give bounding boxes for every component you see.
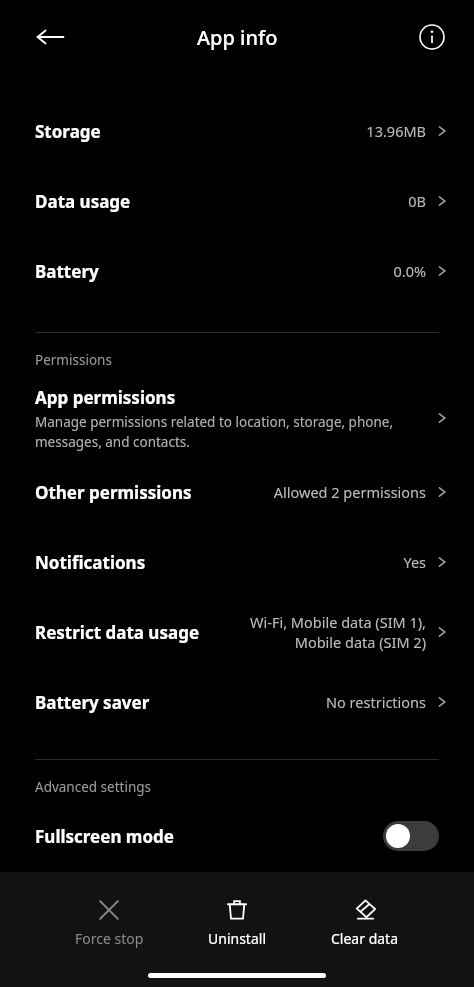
staticText: Force stop [75, 929, 144, 948]
button[interactable]: Force stop [54, 894, 164, 952]
button[interactable]: Battery [0, 236, 474, 306]
staticText: Advanced settings [35, 778, 152, 796]
staticText: Fullscreen mode [35, 825, 383, 848]
staticText: Allowed 2 permissions [273, 482, 426, 502]
button[interactable]: Storage [0, 74, 474, 166]
staticText: Other permissions [35, 481, 192, 504]
staticText: Permissions [35, 351, 112, 369]
button[interactable]: App permissions [0, 379, 474, 457]
staticText: Battery [35, 260, 99, 283]
staticText: 13.96MB [366, 121, 426, 141]
staticText: Data usage [35, 190, 131, 213]
staticText: Battery saver [35, 691, 150, 714]
button[interactable]: Back [26, 13, 74, 61]
staticText: Wi-Fi, Mobile data (SIM 1), Mobile data … [250, 612, 426, 653]
button[interactable]: Data usage [0, 166, 474, 236]
staticText: 0B [408, 191, 426, 211]
button[interactable]: Uninstall [182, 894, 292, 952]
staticText: Restrict data usage [35, 621, 200, 644]
button[interactable]: Notifications [0, 527, 474, 597]
button[interactable]: Restrict data usage [0, 597, 474, 667]
button[interactable]: Other permissions [0, 457, 474, 527]
staticText: App permissions [35, 386, 176, 409]
staticText: 0.0% [393, 261, 426, 281]
button[interactable]: Fullscreen mode toggle [383, 821, 439, 851]
staticText: No restrictions [326, 692, 426, 712]
staticText: Uninstall [208, 929, 266, 948]
button[interactable]: Battery saver [0, 667, 474, 737]
button[interactable]: Clear data [310, 894, 420, 952]
staticText: Yes [403, 552, 426, 572]
button[interactable]: Fullscreen mode [0, 806, 474, 866]
button[interactable]: App details [410, 15, 454, 59]
staticText: Storage [35, 120, 101, 143]
staticText: Notifications [35, 551, 146, 574]
staticText: App info [197, 24, 278, 51]
staticText: Clear data [331, 929, 399, 948]
staticText: Manage permissions related to location, … [35, 413, 405, 451]
